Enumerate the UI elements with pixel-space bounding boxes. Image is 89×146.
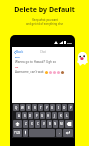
- staticText: G: [41, 114, 44, 118]
- button[interactable]: S: [22, 112, 27, 119]
- staticText: Wanna go to Hawaii?! Ugh so: [15, 60, 57, 64]
- button[interactable]: P: [68, 104, 73, 111]
- staticText: .: [59, 131, 60, 135]
- button[interactable]: Z: [23, 120, 28, 128]
- button[interactable]: Y: [44, 104, 49, 111]
- staticText: D: [29, 114, 32, 118]
- button[interactable]: T: [38, 104, 43, 111]
- staticText: Keep what you want: [32, 18, 58, 22]
- staticText: O: [63, 106, 66, 110]
- button[interactable]: G: [40, 112, 45, 119]
- staticText: T: [40, 106, 42, 110]
- staticText: L: [66, 114, 68, 118]
- staticText: Send a Chat: [15, 131, 30, 135]
- button[interactable]: E: [26, 104, 31, 111]
- button[interactable]: H: [46, 112, 51, 119]
- button[interactable]: L: [64, 112, 69, 119]
- button[interactable]: X: [29, 120, 34, 128]
- button[interactable]: ?123: [13, 129, 22, 137]
- button[interactable]: R: [32, 104, 37, 111]
- staticText: F: [36, 114, 38, 118]
- staticText: Q: [15, 106, 18, 110]
- button[interactable]: Shift: [13, 120, 22, 128]
- button[interactable]: U: [50, 104, 55, 111]
- staticText: 4:20: [67, 41, 72, 44]
- staticText: V: [43, 122, 45, 126]
- staticText: ?123: [14, 131, 21, 135]
- staticText: A: [18, 114, 20, 118]
- button[interactable]: J: [52, 112, 57, 119]
- button[interactable]: N: [53, 120, 58, 128]
- staticText: E: [28, 106, 30, 110]
- button[interactable]: Enter: [63, 129, 73, 137]
- button[interactable]: V: [41, 120, 46, 128]
- staticText: C: [37, 122, 39, 126]
- staticText: Awesome, can't wait: [15, 70, 44, 74]
- staticText: Z: [25, 122, 27, 126]
- staticText: EDIT: [15, 56, 20, 59]
- button[interactable]: B: [47, 120, 52, 128]
- button[interactable]: K: [58, 112, 63, 119]
- staticText: J: [54, 114, 55, 118]
- staticText: K: [60, 114, 62, 118]
- staticText: U: [51, 106, 54, 110]
- button[interactable]: Camera: [66, 130, 72, 136]
- staticText: W: [21, 106, 24, 110]
- button[interactable]: .: [56, 129, 62, 137]
- staticText: Y: [46, 106, 48, 110]
- staticText: Chat: [40, 50, 46, 54]
- button[interactable]: M: [59, 120, 64, 128]
- staticText: S: [24, 114, 26, 118]
- staticText: Delete by Default: [14, 5, 75, 15]
- staticText: Back: [16, 50, 24, 54]
- staticText: and get rid of everything else: [26, 22, 63, 26]
- button[interactable]: Backspace: [65, 120, 73, 128]
- button[interactable]: C: [35, 120, 40, 128]
- staticText: B: [49, 122, 51, 126]
- button[interactable]: D: [28, 112, 33, 119]
- staticText: R: [34, 106, 36, 110]
- button[interactable]: O: [62, 104, 67, 111]
- button[interactable]: I: [56, 104, 61, 111]
- staticText: I: [58, 106, 59, 110]
- button[interactable]: Back: [14, 50, 24, 54]
- button[interactable]: F: [34, 112, 39, 119]
- button[interactable]: Voice input: [23, 129, 28, 137]
- button[interactable]: Q: [13, 104, 19, 111]
- staticText: P: [70, 106, 72, 110]
- staticText: ME: [15, 66, 19, 69]
- staticText: X: [31, 122, 33, 126]
- button[interactable]: A: [16, 112, 21, 119]
- staticText: M: [60, 122, 63, 126]
- button[interactable]: W: [20, 104, 25, 111]
- staticText: N: [54, 122, 57, 126]
- staticText: H: [47, 114, 50, 118]
